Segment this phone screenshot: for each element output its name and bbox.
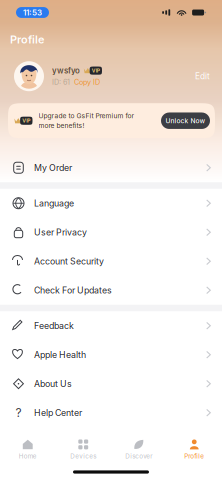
staticText: VIP bbox=[92, 68, 100, 74]
button[interactable]: ? bbox=[0, 398, 222, 427]
staticText: Devices bbox=[70, 452, 96, 460]
staticText: About Us bbox=[34, 378, 72, 389]
staticText: 11:53 bbox=[23, 8, 42, 17]
staticText: Feedback bbox=[34, 320, 74, 331]
staticText: Profile bbox=[10, 33, 44, 46]
button[interactable]: Check For Updates bbox=[0, 276, 222, 305]
button[interactable]: VIP bbox=[8, 103, 215, 138]
staticText: VIP bbox=[22, 118, 30, 124]
staticText: Unlock Now bbox=[165, 117, 205, 125]
staticText: more benefits! bbox=[38, 121, 84, 130]
button[interactable]: User Privacy bbox=[0, 218, 222, 247]
button[interactable]: Copy ID bbox=[74, 78, 100, 87]
staticText: Account Security bbox=[34, 256, 104, 266]
staticText: Copy ID bbox=[74, 78, 100, 87]
button[interactable]: Profile bbox=[166, 433, 222, 464]
button[interactable]: Devices bbox=[55, 433, 111, 464]
staticText: Check For Updates bbox=[34, 285, 112, 295]
button[interactable]: Home bbox=[0, 433, 55, 464]
staticText: Language bbox=[34, 198, 74, 208]
button[interactable]: My Order bbox=[0, 153, 222, 182]
staticText: Help Center bbox=[34, 407, 82, 418]
staticText: My Order bbox=[34, 162, 72, 173]
button[interactable]: Edit bbox=[190, 65, 215, 87]
button[interactable]: Account Security bbox=[0, 247, 222, 276]
staticText: ? bbox=[15, 405, 21, 420]
staticText: Upgrade to GsFit Premium for bbox=[38, 112, 134, 120]
staticText: ywsfyo bbox=[52, 66, 80, 75]
button[interactable]: Language bbox=[0, 189, 222, 218]
staticText: Discover bbox=[125, 452, 152, 460]
button[interactable]: About Us bbox=[0, 369, 222, 398]
staticText: Profile bbox=[184, 452, 204, 460]
staticText: User Privacy bbox=[34, 227, 87, 237]
staticText: Edit bbox=[195, 71, 210, 81]
staticText: Home bbox=[19, 452, 37, 460]
button[interactable]: Discover bbox=[111, 433, 166, 464]
staticText: Apple Health bbox=[34, 349, 86, 360]
staticText: ID: 61 bbox=[52, 78, 70, 87]
button[interactable]: Feedback bbox=[0, 311, 222, 340]
button[interactable]: Apple Health bbox=[0, 340, 222, 369]
